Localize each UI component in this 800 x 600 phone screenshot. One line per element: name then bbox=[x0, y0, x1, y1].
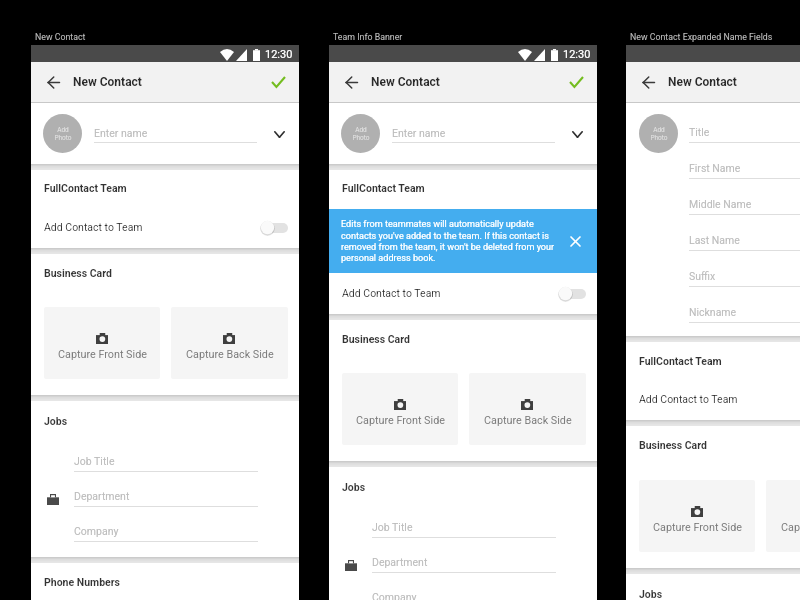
staticText: Jobs bbox=[44, 415, 68, 427]
staticText: Job Title bbox=[372, 521, 413, 533]
button[interactable]: Add Contact to Team bbox=[639, 380, 800, 418]
staticText: Suffix bbox=[689, 270, 716, 282]
staticText: Capture Front Side bbox=[356, 414, 445, 427]
button[interactable]: Capture Back Side bbox=[171, 307, 288, 379]
staticText: New Contact bbox=[371, 75, 440, 89]
button[interactable]: Capture Back Side bbox=[766, 480, 800, 552]
staticText: Capture Back Side bbox=[781, 521, 800, 534]
button[interactable]: Capture Front Side bbox=[44, 307, 160, 379]
staticText: Add Contact to Team bbox=[342, 287, 441, 299]
staticText: Enter name bbox=[392, 127, 446, 139]
button[interactable]: Title bbox=[689, 126, 800, 143]
staticText: Last Name bbox=[689, 234, 740, 246]
staticText: Nickname bbox=[689, 306, 737, 318]
staticText: Edits from teammates will automatically … bbox=[341, 219, 561, 263]
button[interactable]: Company bbox=[74, 525, 258, 542]
staticText: Jobs bbox=[639, 588, 663, 600]
staticText: Team Info Banner bbox=[333, 32, 403, 42]
staticText: Title bbox=[689, 126, 710, 138]
button[interactable]: Company bbox=[372, 591, 556, 600]
staticText: New Contact Expanded Name Fields bbox=[630, 32, 773, 42]
button[interactable]: Job Title bbox=[372, 521, 556, 538]
button[interactable]: Back bbox=[39, 68, 67, 96]
staticText: New Contact bbox=[668, 75, 737, 89]
button[interactable]: Edits from teammates will automatically … bbox=[341, 209, 589, 273]
button[interactable]: Add Photo bbox=[43, 114, 82, 153]
staticText: FullContact Team bbox=[639, 355, 722, 367]
staticText: Capture Front Side bbox=[58, 348, 147, 361]
staticText: Department bbox=[74, 490, 130, 502]
button[interactable]: Department bbox=[74, 490, 258, 507]
staticText: Add Photo bbox=[352, 126, 370, 142]
staticText: Add Contact to Team bbox=[44, 221, 143, 233]
button[interactable]: Capture Front Side bbox=[342, 373, 458, 445]
staticText: Enter name bbox=[94, 127, 148, 139]
button[interactable]: First Name bbox=[689, 162, 800, 179]
staticText: Add Photo bbox=[54, 126, 72, 142]
button[interactable]: Nickname bbox=[689, 306, 800, 323]
staticText: Jobs bbox=[342, 481, 366, 493]
button[interactable]: Dismiss banner bbox=[561, 227, 589, 255]
staticText: FullContact Team bbox=[342, 182, 425, 194]
button[interactable]: Add Contact to Team bbox=[44, 208, 288, 246]
button[interactable]: Save contact bbox=[563, 69, 589, 95]
button[interactable]: Job Title bbox=[74, 455, 258, 472]
staticText: FullContact Team bbox=[44, 182, 127, 194]
button[interactable]: Save contact bbox=[265, 69, 291, 95]
button[interactable]: Add Photo bbox=[639, 114, 678, 153]
staticText: First Name bbox=[689, 162, 741, 174]
button[interactable]: Back bbox=[337, 68, 365, 96]
staticText: Capture Back Side bbox=[186, 348, 274, 361]
staticText: Company bbox=[74, 525, 119, 537]
staticText: New Contact bbox=[35, 32, 86, 42]
staticText: Capture Back Side bbox=[484, 414, 572, 427]
button[interactable]: Add Contact to Team bbox=[342, 273, 586, 313]
staticText: Business Card bbox=[44, 267, 112, 279]
staticText: Capture Front Side bbox=[653, 521, 742, 534]
button[interactable]: Expand name fields bbox=[565, 122, 589, 146]
staticText: 12:30 bbox=[563, 48, 591, 61]
staticText: Add Contact to Team bbox=[639, 393, 738, 405]
button[interactable]: Last Name bbox=[689, 234, 800, 251]
staticText: Business Card bbox=[639, 439, 707, 451]
button[interactable]: Middle Name bbox=[689, 198, 800, 215]
staticText: Phone Numbers bbox=[44, 576, 120, 588]
staticText: Business Card bbox=[342, 333, 410, 345]
button[interactable]: Add Photo bbox=[341, 114, 380, 153]
staticText: Company bbox=[372, 591, 417, 600]
button[interactable]: Suffix bbox=[689, 270, 800, 287]
button[interactable]: Capture Front Side bbox=[639, 480, 755, 552]
staticText: Middle Name bbox=[689, 198, 752, 210]
button[interactable]: Expand name fields bbox=[267, 122, 291, 146]
button[interactable]: Capture Back Side bbox=[469, 373, 586, 445]
staticText: Job Title bbox=[74, 455, 115, 467]
button[interactable]: Department bbox=[372, 556, 556, 573]
staticText: Department bbox=[372, 556, 428, 568]
button[interactable]: Back bbox=[634, 68, 662, 96]
staticText: 12:30 bbox=[265, 48, 293, 61]
staticText: Add Photo bbox=[650, 126, 668, 142]
staticText: New Contact bbox=[73, 75, 142, 89]
